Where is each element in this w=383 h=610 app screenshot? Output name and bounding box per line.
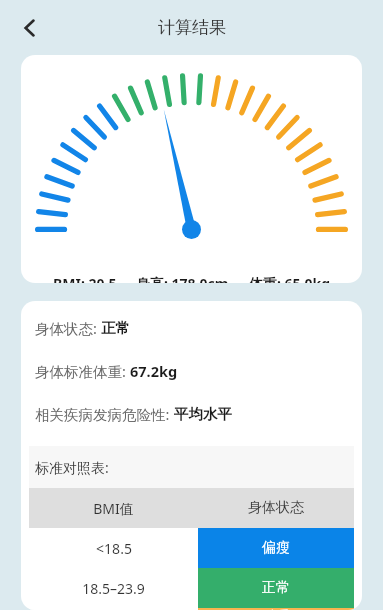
- staticText: 身体状态:: [35, 318, 101, 338]
- staticText: 身体标准体重:: [35, 361, 130, 381]
- staticText: 67.2kg: [130, 361, 178, 381]
- staticText: 正常: [262, 579, 290, 597]
- staticText: BMI值: [93, 499, 134, 518]
- staticText: 身体状态: [248, 499, 304, 517]
- staticText: 体重: 65.0kg: [249, 274, 331, 283]
- button[interactable]: Back: [10, 8, 50, 48]
- staticText: 平均水平: [174, 405, 232, 423]
- staticText: 身高: 178.0cm: [136, 274, 229, 283]
- staticText: 偏瘦: [262, 539, 290, 557]
- button[interactable]: BMI值: [29, 488, 354, 528]
- staticText: 标准对照表:: [35, 458, 109, 477]
- staticText: 计算结果: [158, 17, 226, 38]
- staticText: 相关疾病发病危险性:: [35, 404, 174, 424]
- staticText: 18.5–23.9: [82, 579, 145, 598]
- button[interactable]: 24–27.9: [29, 608, 354, 610]
- staticText: <18.5: [96, 539, 132, 558]
- button[interactable]: 18.5–23.9: [29, 568, 354, 608]
- staticText: 过重: [262, 608, 290, 610]
- staticText: 正常: [101, 319, 130, 337]
- staticText: BMI: 20.5: [53, 274, 117, 283]
- button[interactable]: <18.5: [29, 528, 354, 568]
